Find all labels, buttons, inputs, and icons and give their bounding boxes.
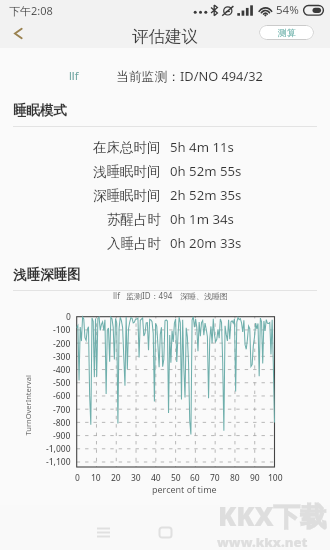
staticText: -1,000 [46,443,71,454]
staticText: 苏醒占时 [107,211,161,228]
staticText: llf [69,68,79,83]
staticText: 2h 52m 35s [170,186,242,204]
staticText: 测算 [278,27,296,38]
staticText: 30 [131,472,141,483]
button[interactable]: Recents [151,518,179,546]
staticText: 0 [75,472,80,483]
staticText: KKX下载 [218,498,327,534]
button[interactable]: 测算 [259,25,314,40]
staticText: 深睡眠时间 [93,187,161,204]
staticText: 0h 52m 55s [170,162,242,180]
staticText: 当前监测：ID/NO 494/32 [116,67,263,84]
staticText: 睡眠模式 [13,102,67,119]
staticText: -200 [53,338,71,349]
staticText: 评估建议 [132,26,198,47]
staticText: 浅睡眠时间 [93,163,161,180]
staticText: llf [113,290,120,301]
staticText: 监测ID：494 [126,290,173,301]
staticText: 100 [268,472,283,483]
staticText: 在床总时间 [93,139,161,156]
staticText: -400 [53,364,71,375]
staticText: 深睡、浅睡图 [180,291,228,301]
button[interactable]: Menu [89,518,117,546]
staticText: 10 [91,472,101,483]
staticText: -900 [53,430,71,441]
staticText: 5h 4m 11s [170,138,234,156]
staticText: -800 [53,417,71,428]
staticText: -600 [53,390,71,401]
staticText: 40 [151,472,161,483]
staticText: 0h 20m 33s [170,234,242,252]
staticText: 下午2:08 [9,3,53,18]
staticText: -700 [53,404,71,415]
staticText: 70 [210,472,220,483]
staticText: 20 [111,472,121,483]
staticText: 入睡占时 [107,235,161,252]
staticText: percent of time [152,483,217,495]
staticText: 54% [276,2,299,18]
staticText: 90 [250,472,260,483]
staticText: -100 [53,324,71,335]
staticText: TurnOverInterval [22,374,32,435]
staticText: 60 [190,472,200,483]
staticText: 50 [171,472,181,483]
staticText: 80 [230,472,240,483]
staticText: 0 [66,311,71,322]
staticText: -300 [53,351,71,362]
staticText: -500 [53,377,71,388]
staticText: 浅睡深睡图 [13,266,81,283]
button[interactable]: Back [0,19,36,47]
staticText: -1,100 [46,456,71,467]
staticText: 0h 1m 34s [170,210,234,228]
staticText: www.kkx.net [217,533,308,550]
